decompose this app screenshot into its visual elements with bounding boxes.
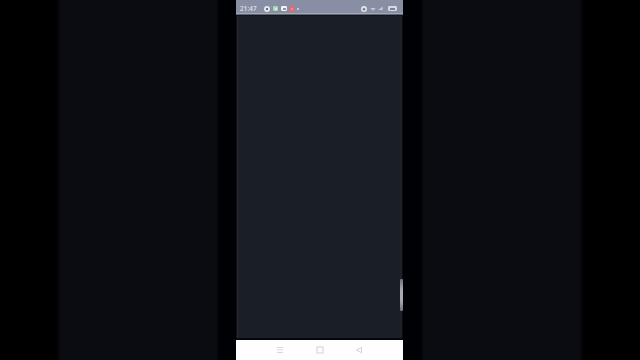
button[interactable]: Home (309, 340, 331, 360)
button[interactable]: Recent apps (269, 340, 291, 360)
button[interactable]: Back (348, 340, 370, 360)
staticText: 21:47 (240, 4, 257, 13)
